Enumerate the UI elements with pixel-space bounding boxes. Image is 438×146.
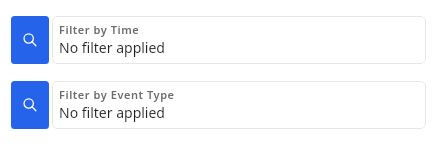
button[interactable]: Search — [11, 16, 426, 64]
staticText: No filter applied — [59, 103, 165, 122]
button[interactable]: Filter by Time — [52, 16, 426, 64]
button[interactable]: Search — [11, 81, 49, 129]
button[interactable]: Search — [11, 81, 426, 129]
staticText: Filter by Event Type — [59, 87, 175, 102]
staticText: Filter by Time — [59, 22, 140, 37]
staticText: No filter applied — [59, 38, 165, 57]
button[interactable]: Search — [11, 16, 49, 64]
button[interactable]: Filter by Event Type — [52, 81, 426, 129]
